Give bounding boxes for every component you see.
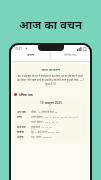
- staticText: भजन संहिता 119: 17, 30-31, 33-34, 36, 37…: [31, 115, 84, 118]
- staticText: प्रार्थना:: [17, 135, 31, 138]
- staticText: सायं पाठ:: [17, 125, 31, 128]
- button[interactable]: वचन: [11, 52, 50, 57]
- staticText: भजन संहिता 119: 9, 10, 11: [31, 120, 84, 123]
- button[interactable]: 13 अक्टूबर 2025: [14, 99, 87, 141]
- button[interactable]: आज का वचन: [14, 64, 87, 89]
- staticText: आज का वचन: [41, 67, 60, 72]
- staticText: यूह. 7; मत्ती योहन 6:42C, 44C: [31, 130, 84, 133]
- staticText: आज का वचन: [19, 17, 83, 33]
- staticText: कुलुस्सियों 1:1-12, 22: [31, 125, 84, 128]
- staticText: इस में प्रेम नहीं कि हम ने परमेश्वर से प…: [17, 74, 84, 86]
- staticText: 13 अक्टूबर 2025: [40, 101, 62, 105]
- button[interactable]: दैनिक पाठ: [51, 52, 90, 57]
- staticText: वचन: [27, 52, 34, 57]
- staticText: वार्षिक:: [17, 130, 31, 133]
- staticText: 10:31: [14, 47, 23, 51]
- staticText: भज. भजन 10:23-37: [31, 135, 84, 138]
- staticText: दैनिक पाठ: [19, 92, 33, 97]
- staticText: मनन:: [17, 115, 31, 118]
- staticText: दैनिक पाठ: [64, 52, 77, 57]
- staticText: प्रातः पाठ:: [17, 110, 31, 113]
- staticText: मीका 1-3; प्रेरितों के काम 22: [31, 110, 84, 113]
